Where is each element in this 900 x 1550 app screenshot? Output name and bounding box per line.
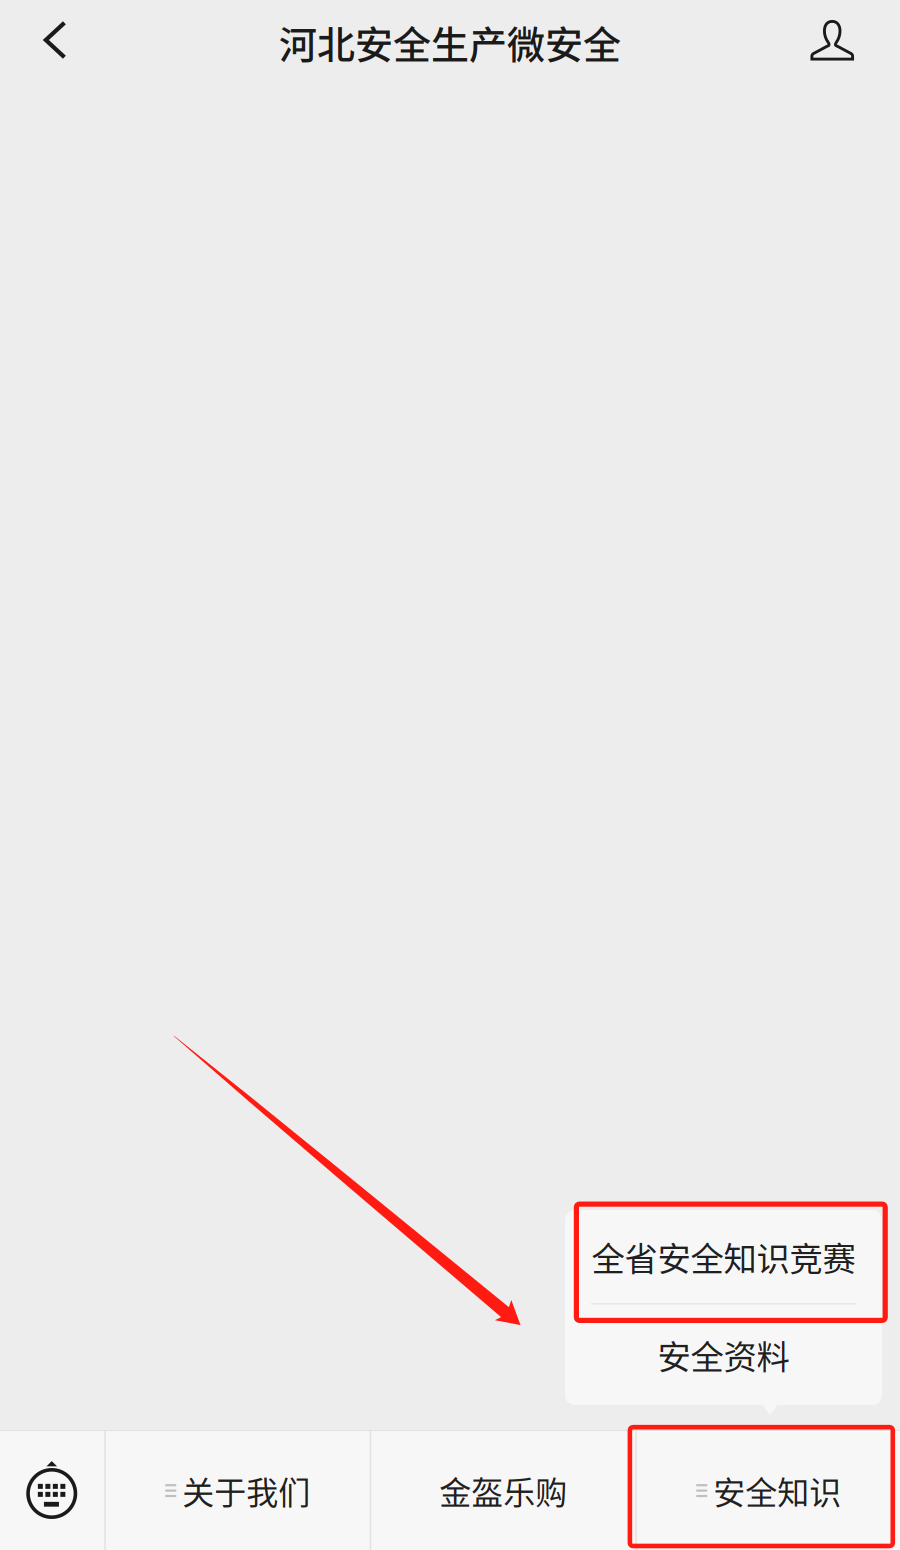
button[interactable]: 关于我们 xyxy=(106,1431,370,1550)
button[interactable]: Keyboard xyxy=(0,1431,104,1550)
button[interactable]: Back xyxy=(0,0,110,84)
button[interactable]: 全省安全知识竞赛 xyxy=(565,1210,882,1303)
button[interactable]: 金盔乐购 xyxy=(371,1431,635,1550)
staticText: 安全资料 xyxy=(657,1331,789,1379)
staticText: 河北安全生产微安全 xyxy=(279,14,621,69)
staticText: 全省安全知识竞赛 xyxy=(591,1232,855,1281)
button[interactable]: 安全知识 xyxy=(637,1431,900,1550)
staticText: 关于我们 xyxy=(182,1467,310,1514)
staticText: 金盔乐购 xyxy=(439,1467,567,1514)
button[interactable]: 安全资料 xyxy=(565,1304,882,1405)
staticText: 安全知识 xyxy=(713,1467,841,1514)
button[interactable]: Profile xyxy=(790,0,900,84)
